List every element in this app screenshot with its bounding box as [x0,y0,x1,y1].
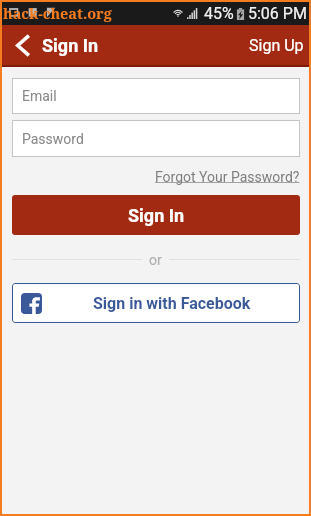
staticText: or [149,252,162,268]
button[interactable]: Password [12,120,300,157]
staticText: Sign Up [249,36,304,55]
button[interactable]: Back [8,30,38,60]
staticText: Forgot Your Password? [155,169,300,185]
staticText: Sign in with Facebook [93,294,251,313]
staticText: 5:06 PM [248,4,307,23]
button[interactable]: Sign In [12,195,300,235]
staticText: Password [22,131,84,147]
button[interactable]: Email [12,78,300,114]
staticText: hack-cheat.org [3,3,112,23]
staticText: Sign In [128,205,185,226]
button[interactable]: Sign in with Facebook [12,283,300,323]
staticText: 45% [204,4,234,23]
button[interactable]: Forgot Your Password? [155,167,300,187]
staticText: Sign In [42,35,99,56]
button[interactable]: Sign Up [244,30,309,61]
staticText: Email [22,88,57,104]
